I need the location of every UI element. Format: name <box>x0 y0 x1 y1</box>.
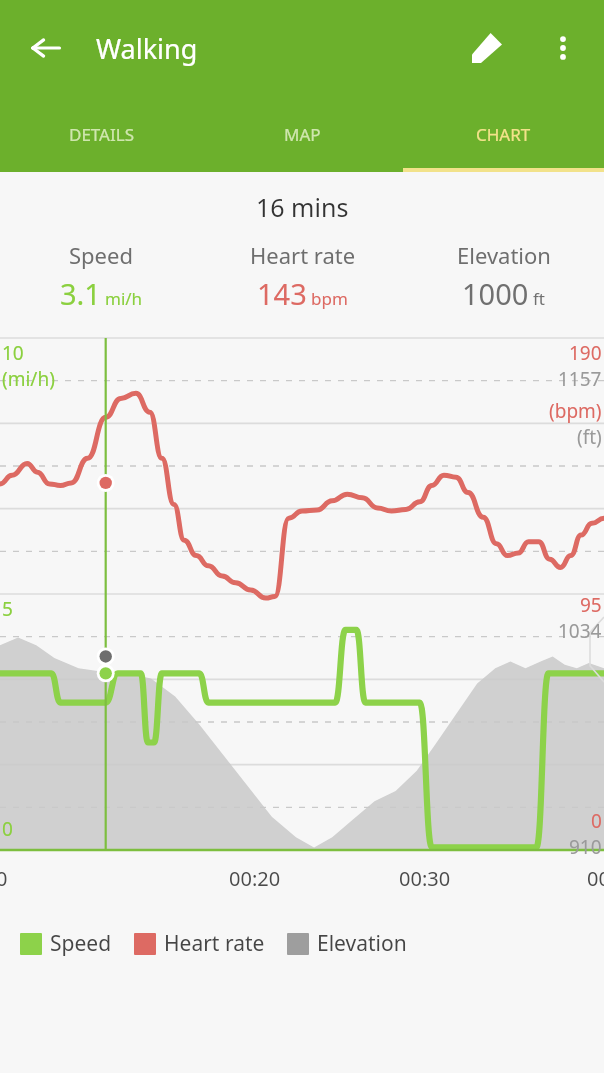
staticText: (bpm) <box>549 398 602 424</box>
staticText: 0 <box>591 808 602 834</box>
staticText: DETAILS <box>69 123 134 146</box>
staticText: 0 <box>0 865 8 892</box>
staticText: Elevation <box>317 929 407 958</box>
staticText: 190 <box>569 340 602 366</box>
staticText: 00:20 <box>229 865 281 892</box>
button[interactable]: Edit <box>456 17 518 79</box>
staticText: Speed <box>50 929 112 958</box>
button[interactable]: Speed <box>20 929 112 958</box>
button[interactable]: Heart rate <box>202 240 403 313</box>
button[interactable]: Elevation <box>287 929 407 958</box>
button[interactable]: Elevation <box>403 240 604 313</box>
staticText: 143 <box>257 274 307 313</box>
staticText: bpm <box>311 287 348 310</box>
staticText: Heart rate <box>164 929 265 958</box>
button[interactable]: DETAILS <box>0 96 202 172</box>
staticText: Elevation <box>457 240 551 270</box>
staticText: Speed <box>69 240 133 270</box>
staticText: 3.1 <box>60 274 101 313</box>
staticText: Walking <box>96 30 198 67</box>
staticText: 1034 <box>558 618 602 644</box>
staticText: ft <box>533 287 545 310</box>
staticText: CHART <box>476 123 531 146</box>
staticText: MAP <box>284 123 321 146</box>
staticText: 10 <box>2 340 24 366</box>
staticText: 1157 <box>558 366 602 392</box>
staticText: 1000 <box>462 274 529 313</box>
staticText: 00:30 <box>399 865 451 892</box>
button[interactable]: Heart rate <box>134 929 265 958</box>
staticText: mi/h <box>105 287 143 310</box>
staticText: (ft) <box>577 424 602 450</box>
button[interactable]: Back <box>14 16 78 80</box>
staticText: 00 <box>587 865 604 892</box>
button[interactable]: Speed <box>0 240 202 313</box>
button[interactable]: MAP <box>202 96 403 172</box>
staticText: (mi/h) <box>2 366 55 392</box>
button[interactable]: CHART <box>403 96 604 172</box>
staticText: 95 <box>580 592 602 618</box>
button[interactable]: More options <box>532 17 594 79</box>
staticText: Heart rate <box>250 240 356 270</box>
staticText: 5 <box>2 596 13 622</box>
staticText: 0 <box>2 816 13 842</box>
staticText: 910 <box>569 834 602 860</box>
staticText: 16 mins <box>256 190 349 224</box>
